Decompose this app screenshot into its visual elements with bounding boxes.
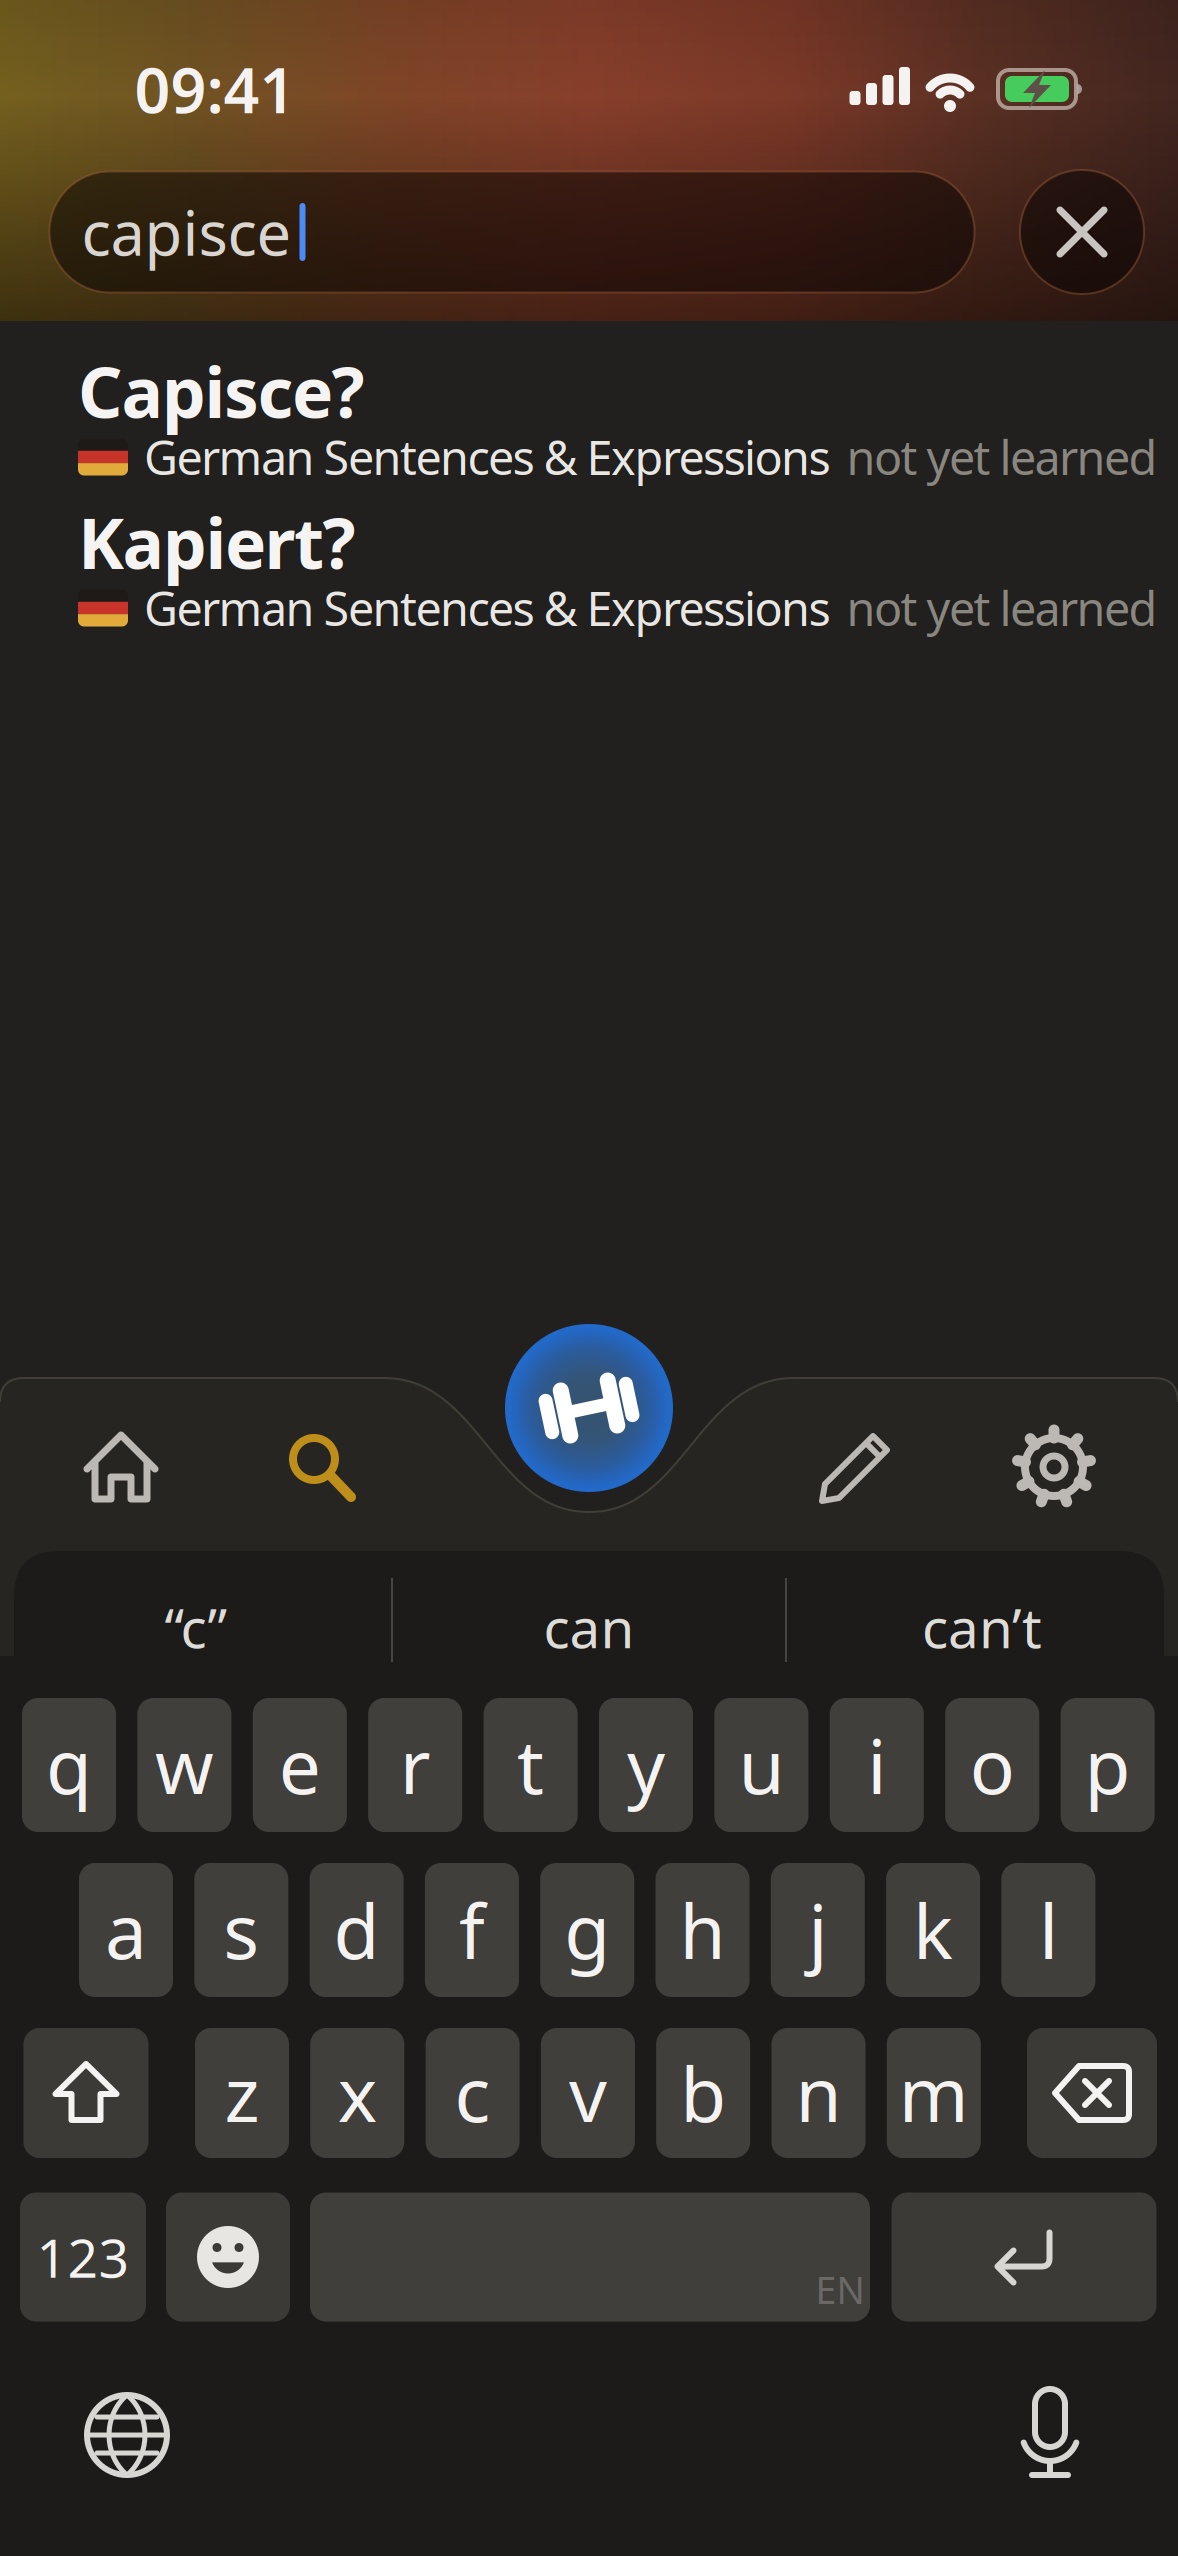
staticText: i	[867, 1715, 886, 1815]
button[interactable]: y	[599, 1698, 693, 1832]
button[interactable]: z	[195, 2028, 289, 2158]
button[interactable]: Capisce?	[0, 348, 1178, 508]
staticText: n	[795, 2043, 841, 2143]
button[interactable]: o	[945, 1698, 1039, 1832]
staticText: not yet learned	[846, 577, 1157, 639]
button[interactable]: q	[22, 1698, 116, 1832]
staticText: z	[224, 2043, 259, 2143]
button[interactable]	[261, 1407, 381, 1527]
button[interactable]	[796, 1407, 916, 1527]
button[interactable]: Kapiert?	[0, 499, 1178, 659]
button[interactable]	[166, 2192, 290, 2321]
staticText: can	[543, 1591, 634, 1663]
staticText: “c”	[164, 1591, 227, 1663]
button[interactable]: k	[886, 1863, 980, 1997]
staticText: t	[517, 1715, 544, 1815]
button[interactable]: s	[194, 1863, 288, 1997]
staticText: can’t	[922, 1591, 1042, 1663]
button[interactable]: f	[425, 1863, 519, 1997]
button[interactable]	[990, 2375, 1110, 2495]
button[interactable]: p	[1061, 1698, 1155, 1832]
staticText: o	[970, 1715, 1015, 1815]
staticText: not yet learned	[846, 426, 1157, 488]
staticText: l	[1039, 1880, 1058, 1980]
button[interactable]: v	[541, 2028, 635, 2158]
staticText: r	[400, 1715, 431, 1815]
staticText: Capisce?	[78, 345, 364, 437]
button[interactable]: l	[1001, 1863, 1095, 1997]
staticText: Kapiert?	[78, 496, 355, 588]
staticText: c	[455, 2043, 491, 2143]
staticText: h	[679, 1880, 725, 1980]
button[interactable]: i	[830, 1698, 924, 1832]
button[interactable]: n	[771, 2028, 865, 2158]
button[interactable]: m	[887, 2028, 981, 2158]
staticText: German Sentences & Expressions	[144, 426, 830, 488]
button[interactable]: w	[137, 1698, 231, 1832]
button[interactable]: d	[310, 1863, 404, 1997]
staticText: j	[808, 1880, 827, 1980]
button[interactable]: 123	[20, 2192, 146, 2321]
button[interactable]	[1027, 2028, 1157, 2158]
staticText: a	[105, 1880, 147, 1980]
button[interactable]: u	[714, 1698, 808, 1832]
staticText: s	[223, 1880, 259, 1980]
staticText: x	[338, 2043, 377, 2143]
button[interactable]: can	[399, 1572, 779, 1682]
staticText: k	[913, 1880, 953, 1980]
button[interactable]: j	[771, 1863, 865, 1997]
button[interactable]	[891, 2192, 1156, 2321]
staticText: v	[569, 2043, 607, 2143]
button[interactable]: h	[655, 1863, 749, 1997]
button[interactable]: a	[79, 1863, 173, 1997]
staticText: German Sentences & Expressions	[144, 577, 830, 639]
staticText: d	[334, 1880, 380, 1980]
staticText: f	[459, 1880, 485, 1980]
button[interactable]	[505, 1324, 673, 1492]
button[interactable]: r	[368, 1698, 462, 1832]
staticText: u	[738, 1715, 784, 1815]
staticText: b	[680, 2043, 726, 2143]
button[interactable]: can’t	[792, 1572, 1172, 1682]
button[interactable]: c	[426, 2028, 520, 2158]
button[interactable]: e	[253, 1698, 347, 1832]
staticText: g	[564, 1880, 610, 1980]
button[interactable]	[994, 1407, 1114, 1527]
button[interactable]: t	[484, 1698, 578, 1832]
button[interactable]: capisce	[49, 171, 974, 292]
staticText: m	[899, 2043, 969, 2143]
button[interactable]	[61, 1407, 181, 1527]
button[interactable]	[23, 2028, 148, 2158]
staticText: 123	[36, 2222, 129, 2292]
staticText: EN	[815, 2265, 864, 2314]
button[interactable]: g	[540, 1863, 634, 1997]
staticText: p	[1085, 1715, 1131, 1815]
staticText: y	[627, 1715, 665, 1815]
button[interactable]: EN	[310, 2192, 870, 2321]
button[interactable]: b	[656, 2028, 750, 2158]
staticText: w	[155, 1715, 214, 1815]
button[interactable]: “c”	[6, 1572, 386, 1682]
staticText: q	[46, 1715, 92, 1815]
button[interactable]	[67, 2375, 187, 2495]
staticText: capisce	[81, 191, 291, 273]
staticText: e	[279, 1715, 321, 1815]
staticText: 09:41	[134, 47, 295, 131]
button[interactable]: x	[310, 2028, 404, 2158]
button[interactable]	[1020, 170, 1144, 294]
